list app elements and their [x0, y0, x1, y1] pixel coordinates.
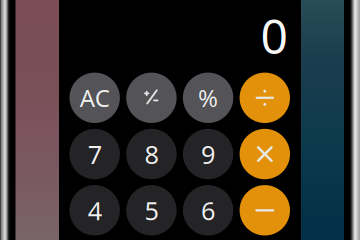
button[interactable]: Minus [240, 185, 290, 235]
staticText: AC [80, 82, 110, 114]
button[interactable]: % [183, 73, 233, 123]
button[interactable]: Divide [240, 73, 290, 123]
button[interactable]: Multiply [240, 129, 290, 179]
button[interactable]: 7 [69, 129, 120, 179]
button[interactable]: 9 [183, 129, 233, 179]
button[interactable]: 8 [126, 129, 177, 179]
button[interactable]: 6 [183, 185, 233, 235]
button[interactable]: 5 [126, 185, 177, 235]
button[interactable]: Plus minus [126, 73, 177, 123]
staticText: % [198, 82, 218, 114]
staticText: 8 [144, 137, 158, 171]
button[interactable]: 4 [69, 185, 120, 235]
staticText: 4 [88, 193, 102, 227]
button[interactable]: AC [69, 73, 120, 123]
staticText: 5 [144, 193, 158, 227]
staticText: 0 [260, 4, 287, 67]
staticText: 9 [201, 137, 215, 171]
staticText: 7 [88, 137, 102, 171]
staticText: 6 [201, 193, 215, 227]
